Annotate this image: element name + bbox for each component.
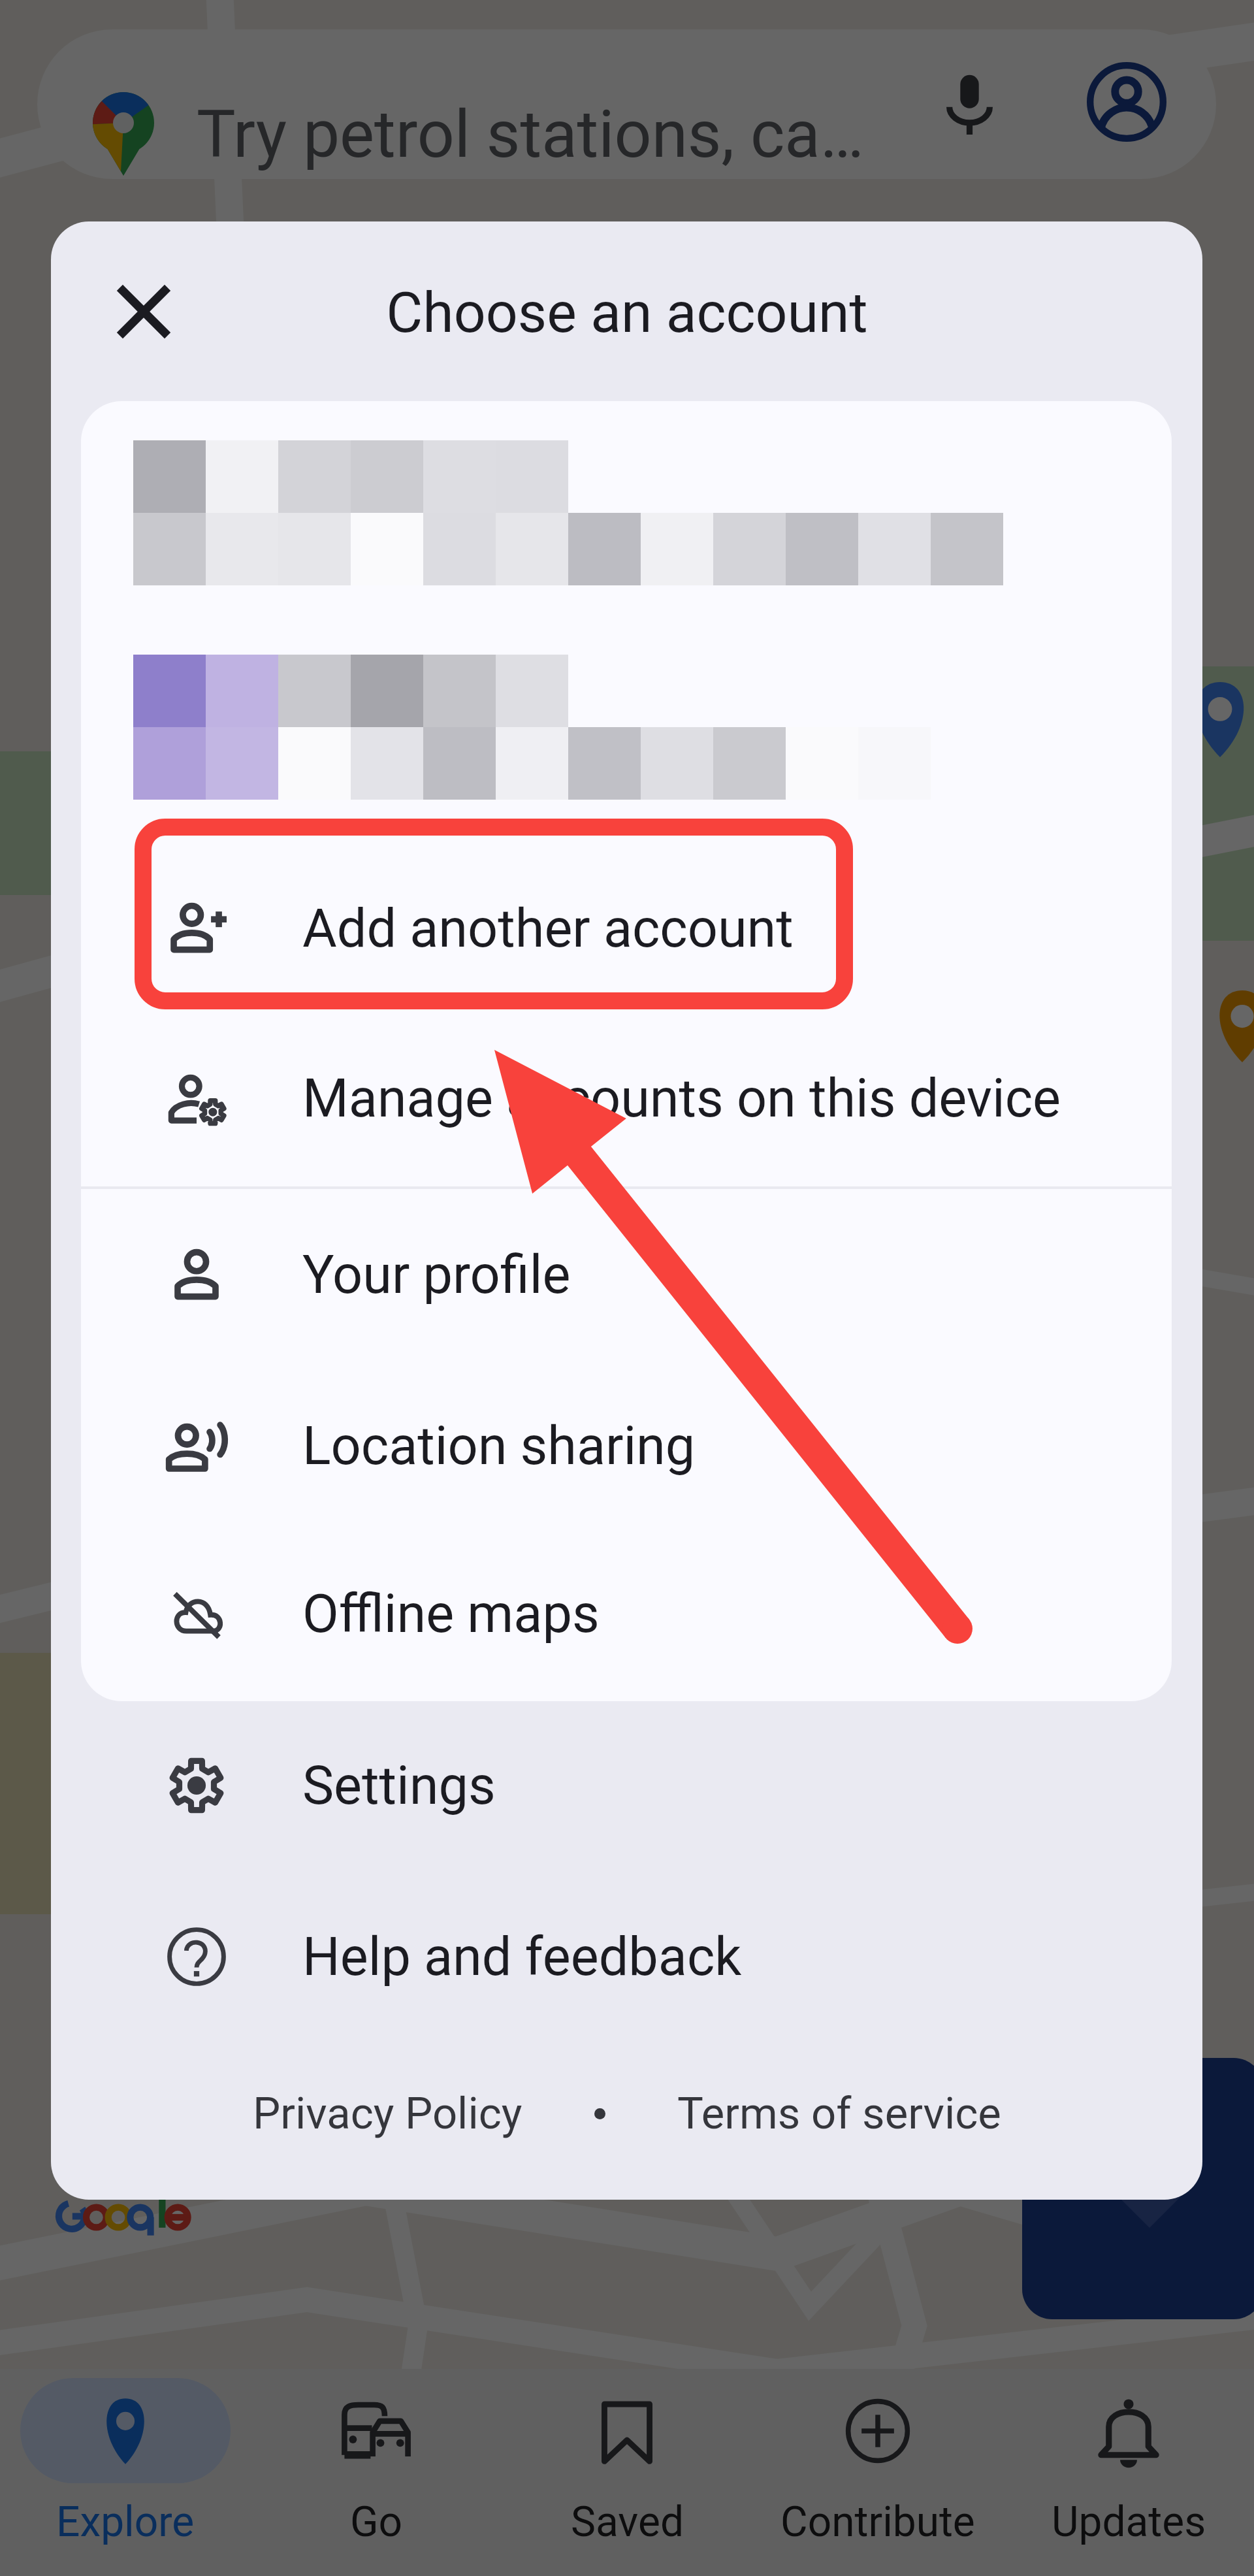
staticText: Go: [350, 2498, 403, 2547]
button[interactable]: Location sharing: [81, 1360, 1172, 1531]
staticText: Your profile: [302, 1244, 571, 1306]
button[interactable]: Contribute: [752, 2378, 1003, 2576]
button[interactable]: Go: [251, 2378, 502, 2576]
staticText: Try petrol stations, ca…: [197, 96, 864, 172]
button[interactable]: Try petrol stations, ca…: [37, 29, 1216, 179]
staticText: Saved: [571, 2498, 684, 2547]
button[interactable]: Add another account: [81, 843, 1172, 1014]
button[interactable]: Your profile: [81, 1189, 1172, 1360]
button[interactable]: Explore: [0, 2378, 251, 2576]
button[interactable]: Close: [101, 269, 187, 355]
button[interactable]: Updates: [1003, 2378, 1254, 2576]
staticText: Location sharing: [302, 1415, 696, 1477]
button[interactable]: Saved: [502, 2378, 752, 2576]
staticText: Settings: [302, 1755, 496, 1817]
staticText: Offline maps: [302, 1583, 600, 1645]
button[interactable]: Account: [1078, 53, 1176, 151]
staticText: Explore: [56, 2498, 195, 2547]
staticText: Updates: [1052, 2498, 1206, 2547]
button[interactable]: Terms of service: [677, 2088, 1001, 2140]
staticText: Contribute: [780, 2498, 975, 2547]
staticText: Choose an account: [386, 280, 868, 346]
button[interactable]: Offline maps: [81, 1528, 1172, 1699]
staticText: Manage accounts on this device: [302, 1068, 1061, 1130]
button[interactable]: Privacy Policy: [253, 2088, 522, 2140]
button[interactable]: Manage accounts on this device: [81, 1013, 1172, 1184]
staticText: Help and feedback: [302, 1926, 742, 1988]
staticText: Add another account: [302, 898, 794, 960]
button[interactable]: Settings: [81, 1700, 1172, 1871]
button[interactable]: Voice search: [920, 55, 1018, 153]
button[interactable]: Help and feedback: [81, 1871, 1172, 2042]
